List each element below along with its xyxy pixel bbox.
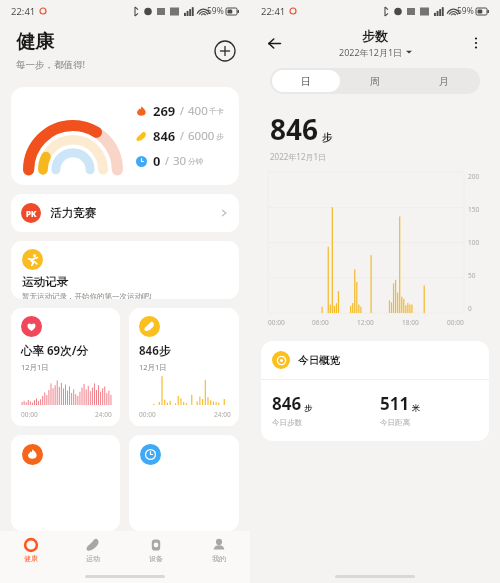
staticText: 分钟 bbox=[188, 157, 203, 166]
staticText: / bbox=[180, 104, 184, 118]
staticText: 200 bbox=[468, 172, 480, 181]
staticText: 24:00 bbox=[214, 410, 231, 419]
button[interactable]: 我的 bbox=[187, 531, 250, 569]
staticText: 22:41 bbox=[11, 5, 36, 18]
button[interactable] bbox=[11, 435, 120, 531]
button[interactable]: 2022年12月1日 bbox=[339, 46, 412, 58]
button[interactable]: 健康 bbox=[0, 531, 62, 569]
staticText: 18:00 bbox=[402, 318, 419, 327]
staticText: 健康 bbox=[16, 30, 54, 54]
staticText: 12月1日 bbox=[139, 362, 167, 372]
staticText: 00:00 bbox=[447, 318, 464, 327]
button[interactable]: Add bbox=[214, 40, 236, 62]
staticText: 100 bbox=[468, 238, 480, 247]
button[interactable]: 运动记录 bbox=[11, 241, 239, 299]
staticText: 269 bbox=[153, 102, 176, 120]
staticText: 846步 bbox=[139, 343, 171, 359]
staticText: 0 bbox=[468, 304, 472, 313]
button[interactable]: 今日概览 bbox=[261, 341, 489, 441]
staticText: 暂无运动记录，开始你的第一次运动吧! bbox=[22, 291, 152, 299]
staticText: 846 bbox=[270, 110, 319, 148]
button[interactable]: 269 bbox=[11, 87, 239, 185]
staticText: 日 bbox=[301, 75, 311, 88]
staticText: 00:00 bbox=[139, 410, 156, 419]
staticText: 心率 69次/分 bbox=[21, 343, 88, 359]
staticText: 千卡 bbox=[209, 107, 224, 116]
staticText: 2022年12月1日 bbox=[339, 46, 403, 58]
staticText: 12月1日 bbox=[21, 362, 49, 372]
staticText: 846 bbox=[153, 127, 176, 145]
staticText: 846 bbox=[272, 392, 302, 415]
staticText: 59% bbox=[457, 5, 474, 17]
staticText: / bbox=[165, 154, 169, 168]
staticText: 150 bbox=[468, 205, 480, 214]
staticText: 步 bbox=[304, 403, 312, 413]
staticText: 周 bbox=[370, 75, 380, 88]
button[interactable]: 周 bbox=[340, 70, 409, 92]
staticText: 6000 bbox=[188, 128, 215, 144]
staticText: 活力竞赛 bbox=[50, 206, 219, 220]
staticText: 511 bbox=[380, 392, 410, 415]
button[interactable] bbox=[129, 435, 239, 531]
button[interactable]: 运动 bbox=[62, 531, 124, 569]
button[interactable]: PK bbox=[11, 194, 239, 232]
button[interactable]: 设备 bbox=[124, 531, 187, 569]
button[interactable]: 心率 69次/分 bbox=[11, 308, 120, 426]
staticText: / bbox=[180, 129, 184, 143]
staticText: 30 bbox=[173, 153, 187, 169]
staticText: 今日概览 bbox=[298, 354, 340, 367]
staticText: 运动记录 bbox=[22, 275, 68, 289]
staticText: 健康 bbox=[24, 554, 38, 563]
staticText: 今日距离 bbox=[380, 418, 410, 427]
button[interactable]: 846步 bbox=[129, 308, 239, 426]
staticText: 24:00 bbox=[95, 410, 112, 419]
staticText: 步 bbox=[322, 131, 332, 144]
staticText: 2022年12月1日 bbox=[270, 151, 327, 162]
staticText: 运动 bbox=[86, 554, 100, 563]
button[interactable]: 月 bbox=[409, 70, 478, 92]
staticText: 我的 bbox=[212, 554, 226, 563]
staticText: 步 bbox=[216, 132, 224, 141]
staticText: 步数 bbox=[362, 28, 388, 44]
staticText: 0 bbox=[153, 152, 161, 170]
button[interactable]: Back bbox=[263, 32, 285, 54]
button[interactable]: 日 bbox=[272, 70, 340, 92]
staticText: 月 bbox=[439, 75, 449, 88]
staticText: 12:00 bbox=[357, 318, 374, 327]
button[interactable]: More options bbox=[465, 32, 487, 54]
staticText: 50 bbox=[468, 271, 476, 280]
staticText: 400 bbox=[188, 103, 208, 119]
staticText: 22:41 bbox=[261, 5, 286, 18]
staticText: 米 bbox=[412, 403, 420, 413]
staticText: 59% bbox=[207, 5, 224, 17]
staticText: 00:00 bbox=[268, 318, 285, 327]
staticText: 设备 bbox=[149, 554, 163, 563]
staticText: PK bbox=[26, 208, 37, 219]
staticText: 06:00 bbox=[312, 318, 329, 327]
staticText: 今日步数 bbox=[272, 418, 302, 427]
staticText: 每一步，都值得! bbox=[16, 58, 86, 71]
staticText: 00:00 bbox=[21, 410, 38, 419]
